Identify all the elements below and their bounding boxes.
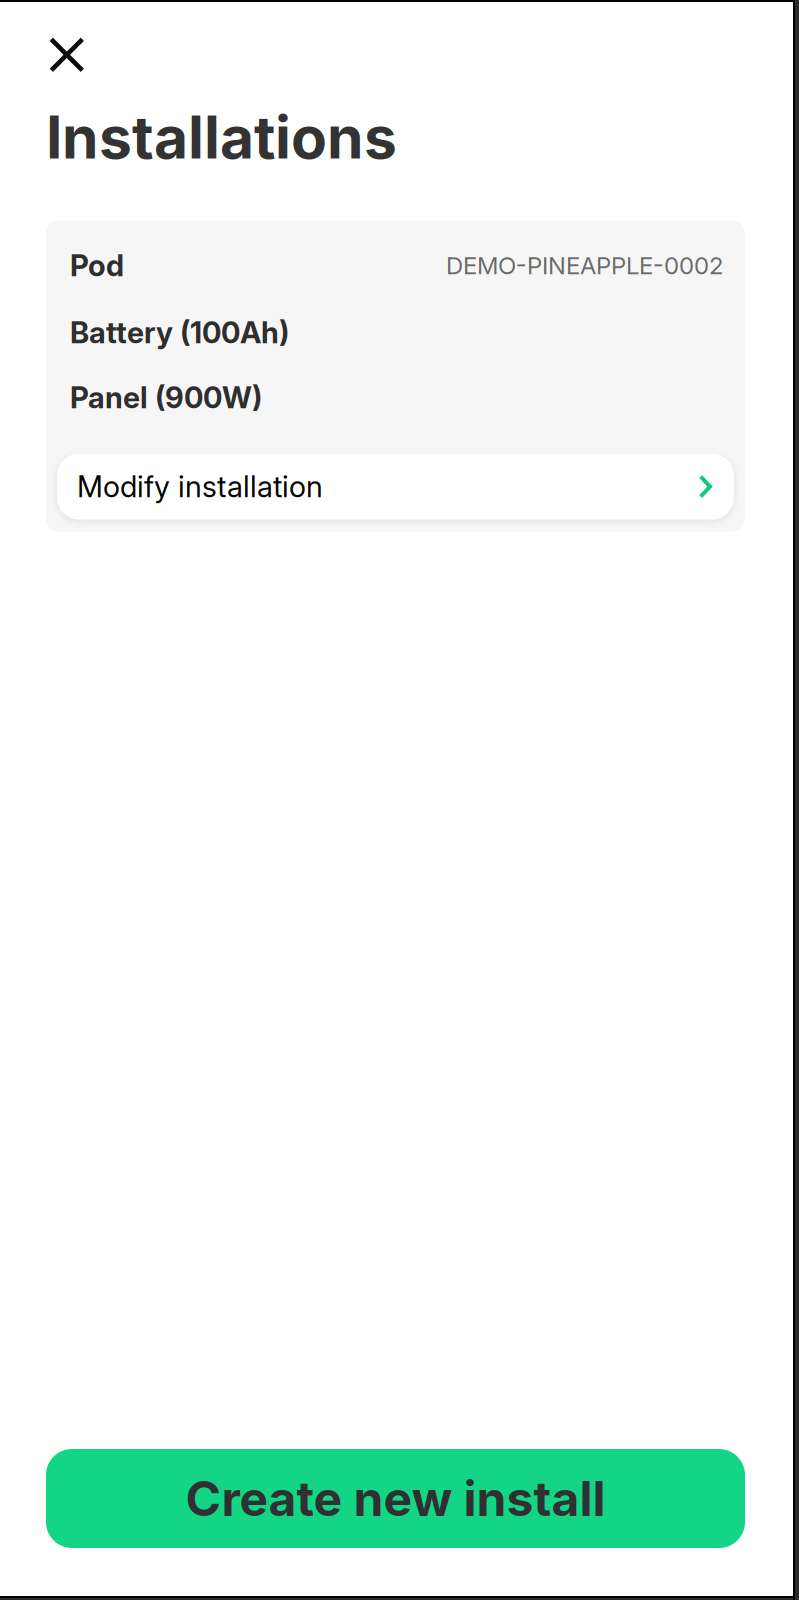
staticText: Panel (900W) [70,380,262,415]
staticText: Installations [46,102,397,173]
staticText: Modify installation [77,469,323,504]
button[interactable]: Create new install [46,1449,745,1548]
staticText: Create new install [185,1469,605,1528]
staticText: Pod [70,248,124,283]
staticText: Battery (100Ah) [70,315,289,350]
button[interactable]: Modify installation [57,454,734,520]
button[interactable]: Close [0,0,107,102]
staticText: DEMO-PINEAPPLE-0002 [446,251,723,280]
